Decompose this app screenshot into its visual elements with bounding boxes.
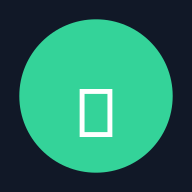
button[interactable]: Start: [19, 19, 173, 173]
